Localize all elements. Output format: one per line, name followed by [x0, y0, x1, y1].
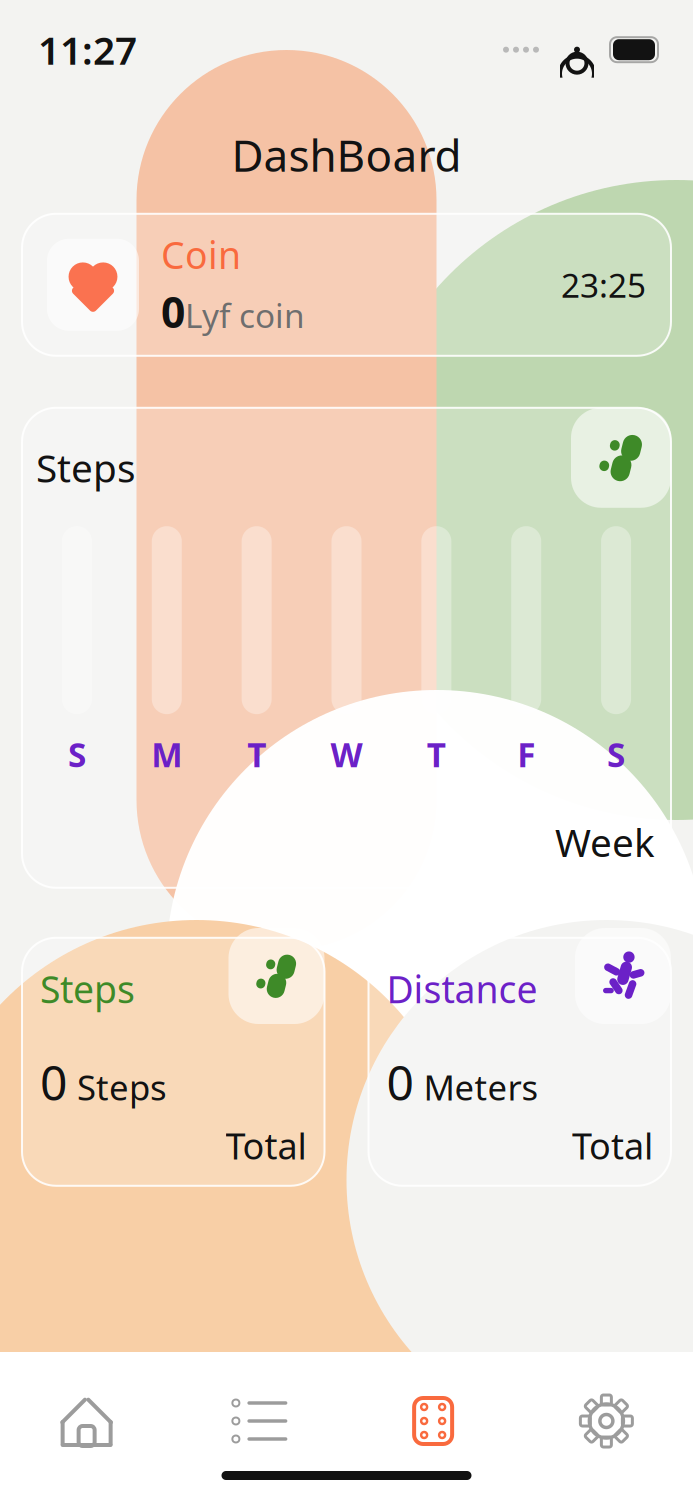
- staticText: 23:25: [561, 263, 646, 307]
- button[interactable]: Settings: [520, 1392, 693, 1450]
- button[interactable]: Steps: [22, 408, 671, 888]
- staticText: DashBoard: [231, 125, 461, 184]
- staticText: Week: [555, 816, 655, 868]
- staticText: Steps: [36, 442, 136, 493]
- staticText: Total: [572, 1122, 653, 1169]
- staticText: Steps: [40, 964, 135, 1014]
- button[interactable]: Steps: [22, 938, 324, 1186]
- staticText: Total: [225, 1122, 306, 1169]
- button[interactable]: Distance: [368, 938, 671, 1186]
- staticText: 0: [161, 283, 185, 340]
- staticText: M: [151, 732, 182, 776]
- staticText: T: [247, 732, 266, 776]
- button[interactable]: Medications: [346, 1392, 520, 1450]
- staticText: Distance: [386, 964, 537, 1014]
- staticText: 0: [40, 1050, 67, 1114]
- staticText: S: [607, 732, 625, 776]
- staticText: 0: [386, 1050, 413, 1114]
- button[interactable]: Home: [0, 1392, 173, 1450]
- staticText: Lyf coin: [185, 293, 305, 337]
- staticText: T: [427, 732, 446, 776]
- staticText: 11:27: [38, 24, 137, 75]
- staticText: Coin: [161, 230, 241, 279]
- staticText: F: [517, 732, 535, 776]
- staticText: Meters: [423, 1064, 538, 1110]
- button[interactable]: Activity list: [173, 1392, 346, 1450]
- staticText: W: [330, 732, 362, 776]
- staticText: S: [68, 732, 86, 776]
- staticText: Steps: [77, 1064, 167, 1110]
- button[interactable]: Coin: [22, 214, 671, 356]
